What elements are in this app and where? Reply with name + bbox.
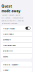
button[interactable]: Help & support [1, 62, 32, 67]
button[interactable]: Sound [1, 54, 32, 59]
staticText: Sound [3, 55, 8, 58]
button[interactable]: Notifications [1, 42, 32, 48]
staticText: Help & support [3, 63, 19, 66]
button[interactable]: Visibility [1, 48, 32, 53]
button[interactable]: About [1, 67, 32, 72]
staticText: Schedule [3, 38, 11, 41]
button[interactable]: Auto reply [1, 31, 32, 36]
button[interactable]: Schedule [1, 37, 32, 42]
staticText: Lorem ipsum dolor sit amet, consectetur … [2, 14, 24, 25]
button[interactable]: Away mode [1, 26, 32, 31]
staticText: Auto reply [3, 32, 14, 35]
staticText: Notifications [3, 43, 16, 47]
staticText: Visibility [3, 49, 13, 52]
staticText: About [3, 68, 9, 71]
staticText: Quest mode away [2, 4, 21, 13]
staticText: Away mode [3, 27, 15, 30]
